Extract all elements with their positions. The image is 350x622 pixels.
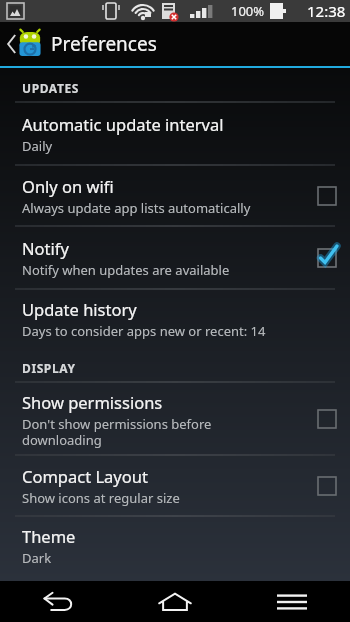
staticText: Don't show permissions before downloadin…	[22, 415, 212, 448]
button[interactable]: Only on wifi	[0, 166, 350, 226]
staticText: Days to consider apps new or recent: 14	[22, 322, 266, 340]
staticText: Update history	[22, 298, 137, 320]
button[interactable]: Show permissions	[304, 383, 350, 455]
staticText: Preferences	[51, 31, 157, 57]
button[interactable]: Only on wifi	[304, 166, 350, 226]
button[interactable]: Up	[0, 22, 350, 66]
button[interactable]: Show permissions	[0, 383, 350, 455]
staticText: Always update app lists automatically	[22, 199, 251, 217]
staticText: 12:38	[307, 1, 346, 21]
button[interactable]: Menu	[233, 581, 350, 622]
button[interactable]: Notify	[0, 227, 350, 289]
staticText: DISPLAY	[22, 360, 76, 376]
staticText: Show permissions	[22, 391, 163, 413]
staticText: Notify when updates are available	[22, 261, 230, 279]
button[interactable]: Automatic update interval	[0, 103, 350, 165]
staticText: Only on wifi	[22, 175, 114, 197]
staticText: UPDATES	[22, 80, 79, 96]
button[interactable]: Notify	[304, 227, 350, 289]
button[interactable]: Theme	[0, 517, 350, 575]
staticText: Notify	[22, 237, 69, 259]
staticText: Automatic update interval	[22, 113, 224, 135]
staticText: Theme	[22, 525, 76, 547]
button[interactable]: Back	[0, 581, 116, 622]
staticText: Dark	[22, 549, 52, 567]
staticText: 100%	[231, 2, 265, 20]
other: Up	[3, 29, 17, 59]
button[interactable]: Compact Layout	[0, 456, 350, 516]
staticText: Daily	[22, 137, 53, 155]
staticText: Show icons at regular size	[22, 489, 180, 507]
button[interactable]: Compact Layout	[304, 456, 350, 516]
button[interactable]: Home	[116, 581, 233, 622]
button[interactable]: Update history	[0, 290, 350, 348]
staticText: Compact Layout	[22, 465, 148, 487]
